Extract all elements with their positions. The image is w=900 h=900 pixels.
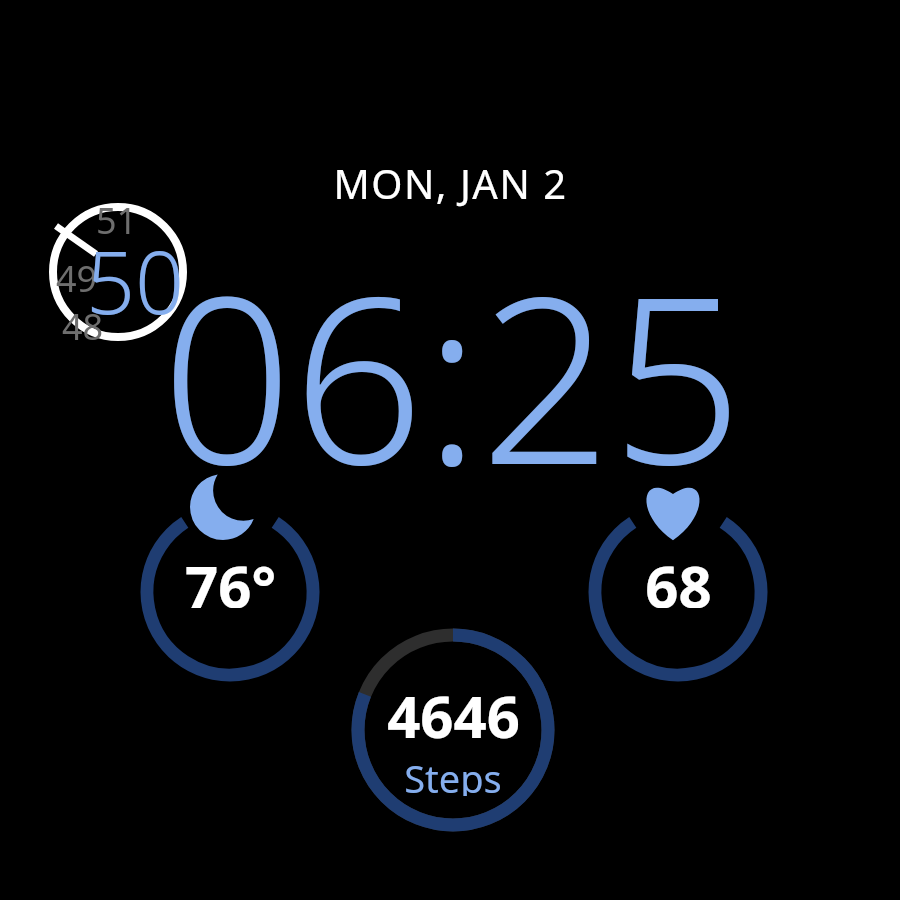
staticText: Steps	[404, 752, 502, 796]
staticText: 51	[96, 196, 138, 245]
staticText: 68	[645, 546, 712, 608]
button[interactable]: 76°	[0, 0, 900, 900]
staticText: 50	[86, 222, 185, 339]
staticText: 49	[56, 254, 98, 303]
staticText: MON, JAN 2	[333, 156, 568, 210]
staticText: 4646	[387, 676, 520, 740]
button[interactable]: Seconds magnifier	[0, 0, 900, 900]
button[interactable]: MON, JAN 2	[0, 0, 900, 900]
button[interactable]: 4646	[0, 0, 900, 900]
staticText: 76°	[185, 546, 276, 608]
button[interactable]: 06:25	[0, 0, 900, 900]
staticText: 48	[62, 302, 104, 351]
button[interactable]: 68	[0, 0, 900, 900]
staticText: 06:25	[161, 218, 743, 531]
